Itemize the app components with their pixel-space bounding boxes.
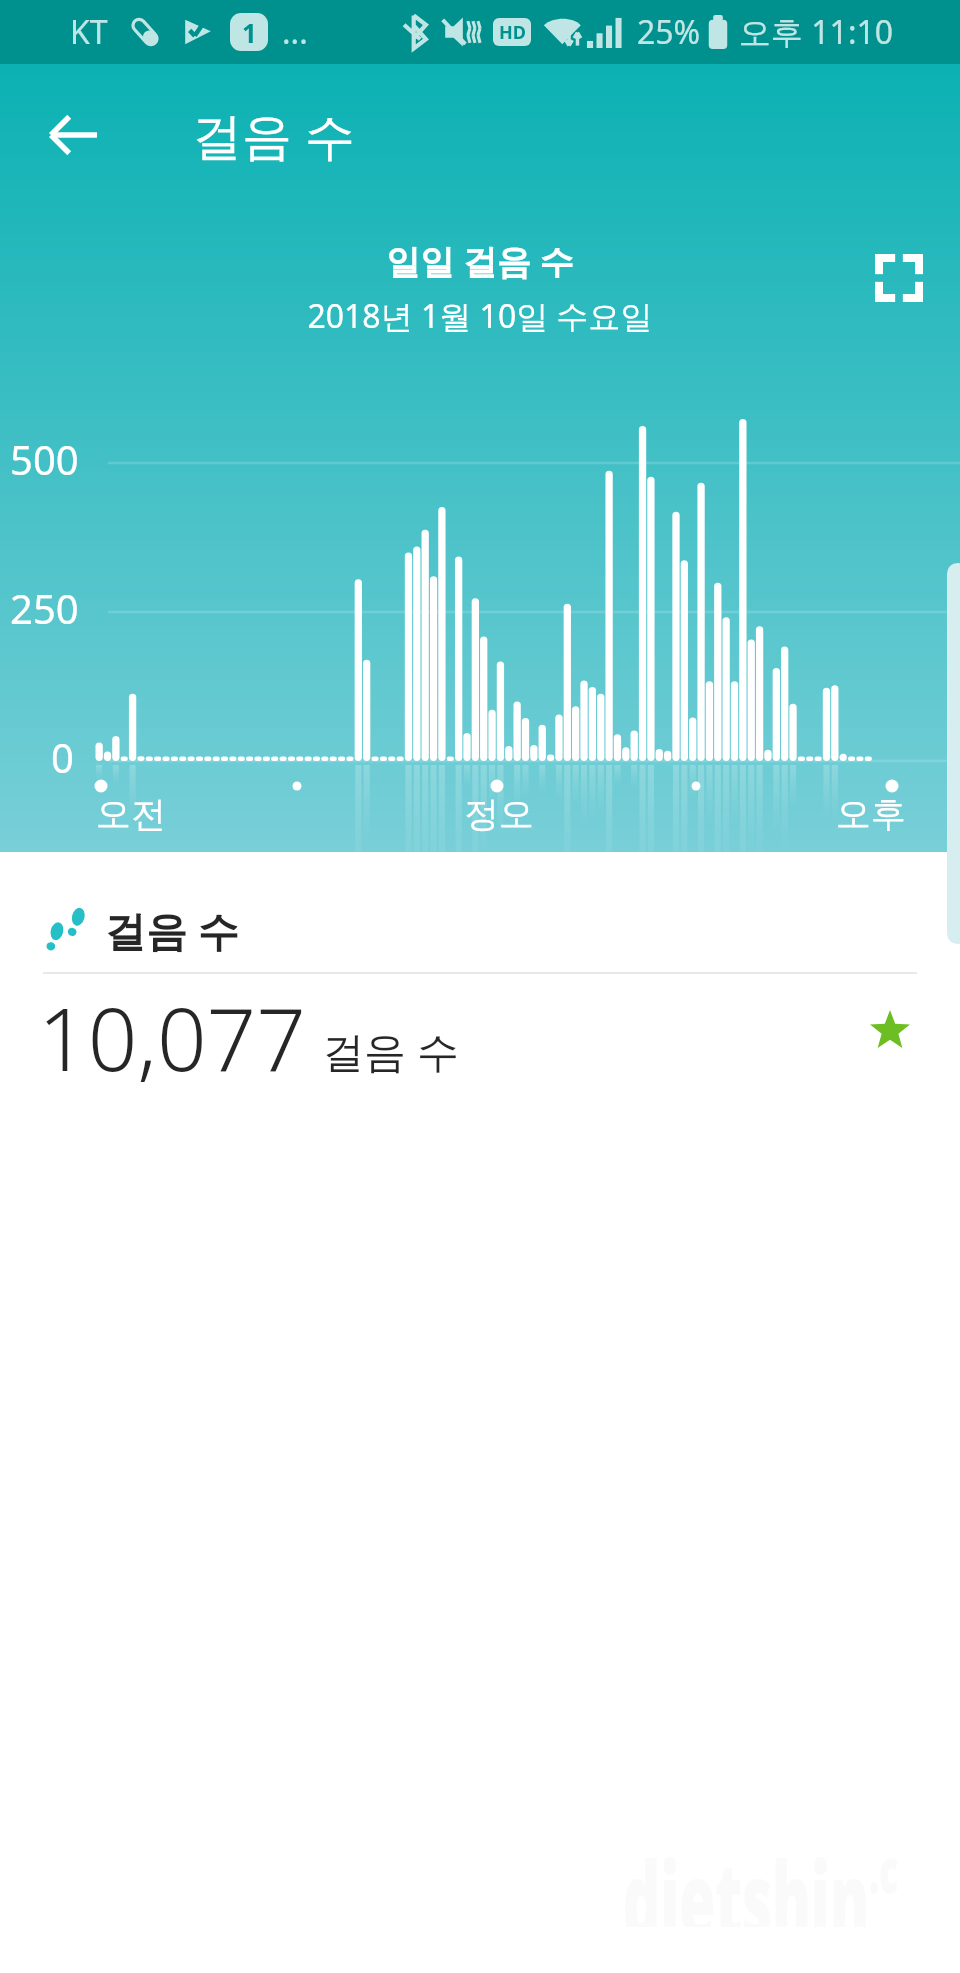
staticText: 걸음 수 (105, 902, 239, 958)
button[interactable]: 10,077 (0, 974, 960, 1100)
button[interactable]: Favorite (854, 995, 926, 1067)
staticText: 25% (637, 10, 701, 54)
button[interactable]: Fullscreen (866, 245, 932, 311)
staticText: 1 (242, 15, 257, 50)
staticText: 오후 11:10 (739, 10, 894, 54)
staticText: 10,077 (38, 978, 306, 1096)
staticText: 걸음 수 (192, 101, 355, 169)
staticText: HD (499, 20, 526, 45)
staticText: 500 (10, 432, 79, 486)
staticText: 250 (10, 581, 79, 635)
staticText: 걸음 수 (322, 1022, 459, 1079)
staticText: KT (70, 10, 108, 54)
button[interactable]: 걸음 수 (0, 852, 960, 972)
staticText: 2018년 1월 10일 수요일 (0, 294, 960, 338)
staticText: 오전 (96, 792, 166, 836)
button[interactable]: Back (0, 64, 148, 206)
staticText: 오후 (836, 792, 906, 836)
staticText: ... (282, 10, 308, 54)
staticText: 일일 걸음 수 (0, 238, 960, 284)
staticText: 정오 (464, 792, 534, 836)
staticText: 0 (51, 730, 74, 784)
